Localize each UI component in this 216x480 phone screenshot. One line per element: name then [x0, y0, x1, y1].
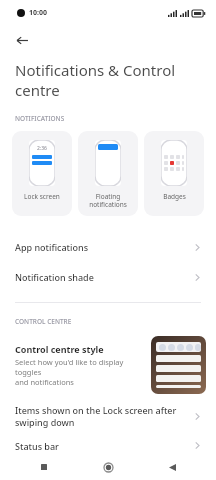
staticText: NOTIFICATIONS: [15, 114, 65, 123]
staticText: App notifications: [15, 241, 89, 253]
staticText: Badges: [163, 192, 186, 201]
button[interactable]: Items shown on the Lock screen after: [0, 400, 216, 432]
staticText: Notifications & Control: [15, 60, 176, 80]
staticText: Floating notifications: [89, 192, 127, 209]
staticText: Items shown on the Lock screen after: [15, 404, 177, 416]
button[interactable]: Recents: [34, 457, 54, 477]
other: Open: [194, 272, 201, 283]
button[interactable]: Notification shade: [0, 262, 216, 292]
staticText: Lock screen: [24, 192, 60, 201]
staticText: Notification shade: [15, 271, 94, 283]
staticText: swiping down: [15, 416, 75, 428]
button[interactable]: Back: [9, 27, 35, 53]
button[interactable]: Back: [162, 457, 182, 477]
staticText: CONTROL CENTRE: [15, 317, 72, 326]
staticText: Control centre style: [15, 343, 104, 355]
staticText: Status bar: [15, 440, 59, 452]
staticText: centre: [15, 80, 60, 100]
other: Open: [194, 440, 201, 451]
staticText: 10:00: [29, 8, 47, 18]
button[interactable]: Control centre style: [0, 336, 216, 394]
other: Open: [194, 242, 201, 253]
button[interactable]: Home: [98, 457, 118, 477]
other: Open: [194, 411, 201, 422]
button[interactable]: Badges: [144, 131, 204, 216]
button[interactable]: App notifications: [0, 232, 216, 262]
button[interactable]: Status bar: [0, 440, 216, 453]
button[interactable]: 2:36: [12, 131, 72, 216]
staticText: Select how you'd like to display toggles: [15, 357, 145, 377]
staticText: and notifications: [15, 377, 74, 387]
button[interactable]: Floating notifications: [78, 131, 138, 216]
staticText: 2:36: [37, 145, 47, 152]
